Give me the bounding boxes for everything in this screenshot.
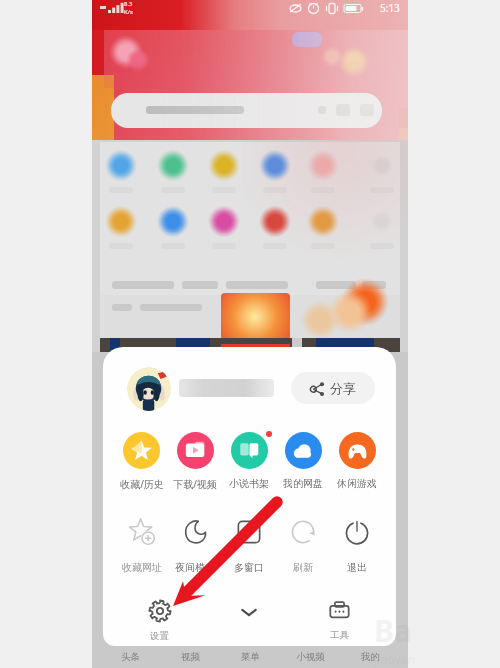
button[interactable]: 分享 xyxy=(291,372,375,404)
button[interactable]: 菜单 xyxy=(220,646,280,668)
button[interactable]: 我的网盘 xyxy=(276,432,330,490)
staticText: 菜单 xyxy=(241,651,260,663)
button[interactable]: 我的 xyxy=(340,646,400,668)
button[interactable]: 收藏/历史 xyxy=(115,432,168,491)
staticText: 工具 xyxy=(330,629,349,641)
button[interactable]: Collapse menu xyxy=(204,599,294,623)
button[interactable]: 工具 xyxy=(294,599,384,641)
staticText: 收藏网址 xyxy=(122,561,162,574)
staticText: 小视频 xyxy=(296,651,325,663)
button[interactable]: 收藏网址 xyxy=(115,518,168,574)
button[interactable]: 刷新 xyxy=(276,518,330,574)
staticText: 退出 xyxy=(347,561,367,574)
staticText: 下载/视频 xyxy=(173,477,217,491)
button[interactable]: 小说书架 xyxy=(222,432,276,490)
staticText: 小说书架 xyxy=(229,477,269,490)
staticText: 8.3 xyxy=(124,0,133,8)
button[interactable]: 夜间模式 xyxy=(168,518,222,574)
button[interactable]: 多窗口 xyxy=(222,518,276,574)
staticText: K/s xyxy=(124,8,133,16)
staticText: 视频 xyxy=(181,651,200,663)
staticText: 休闲游戏 xyxy=(337,477,377,490)
staticText: 多窗口 xyxy=(234,561,264,574)
staticText: Ba xyxy=(374,610,412,651)
button[interactable]: Profile avatar xyxy=(127,367,171,411)
button[interactable]: 小视频 xyxy=(280,646,340,668)
staticText: 刷新 xyxy=(293,561,313,574)
button[interactable]: 下载/视频 xyxy=(168,432,222,491)
button[interactable]: 设置 xyxy=(115,599,204,642)
staticText: 收藏/历史 xyxy=(120,477,164,491)
staticText: 我的网盘 xyxy=(283,477,323,490)
button[interactable]: 视频 xyxy=(160,646,220,668)
staticText: 设置 xyxy=(150,630,169,642)
staticText: 5:13 xyxy=(380,1,400,15)
staticText: 头条 xyxy=(121,651,140,663)
staticText: jingyan xyxy=(374,651,416,667)
staticText: 夜间模式 xyxy=(175,561,215,574)
button[interactable]: 休闲游戏 xyxy=(330,432,384,490)
staticText: 分享 xyxy=(330,380,356,396)
button[interactable]: 退出 xyxy=(330,518,384,574)
staticText: 我的 xyxy=(361,651,380,663)
button[interactable]: 头条 xyxy=(100,646,160,668)
